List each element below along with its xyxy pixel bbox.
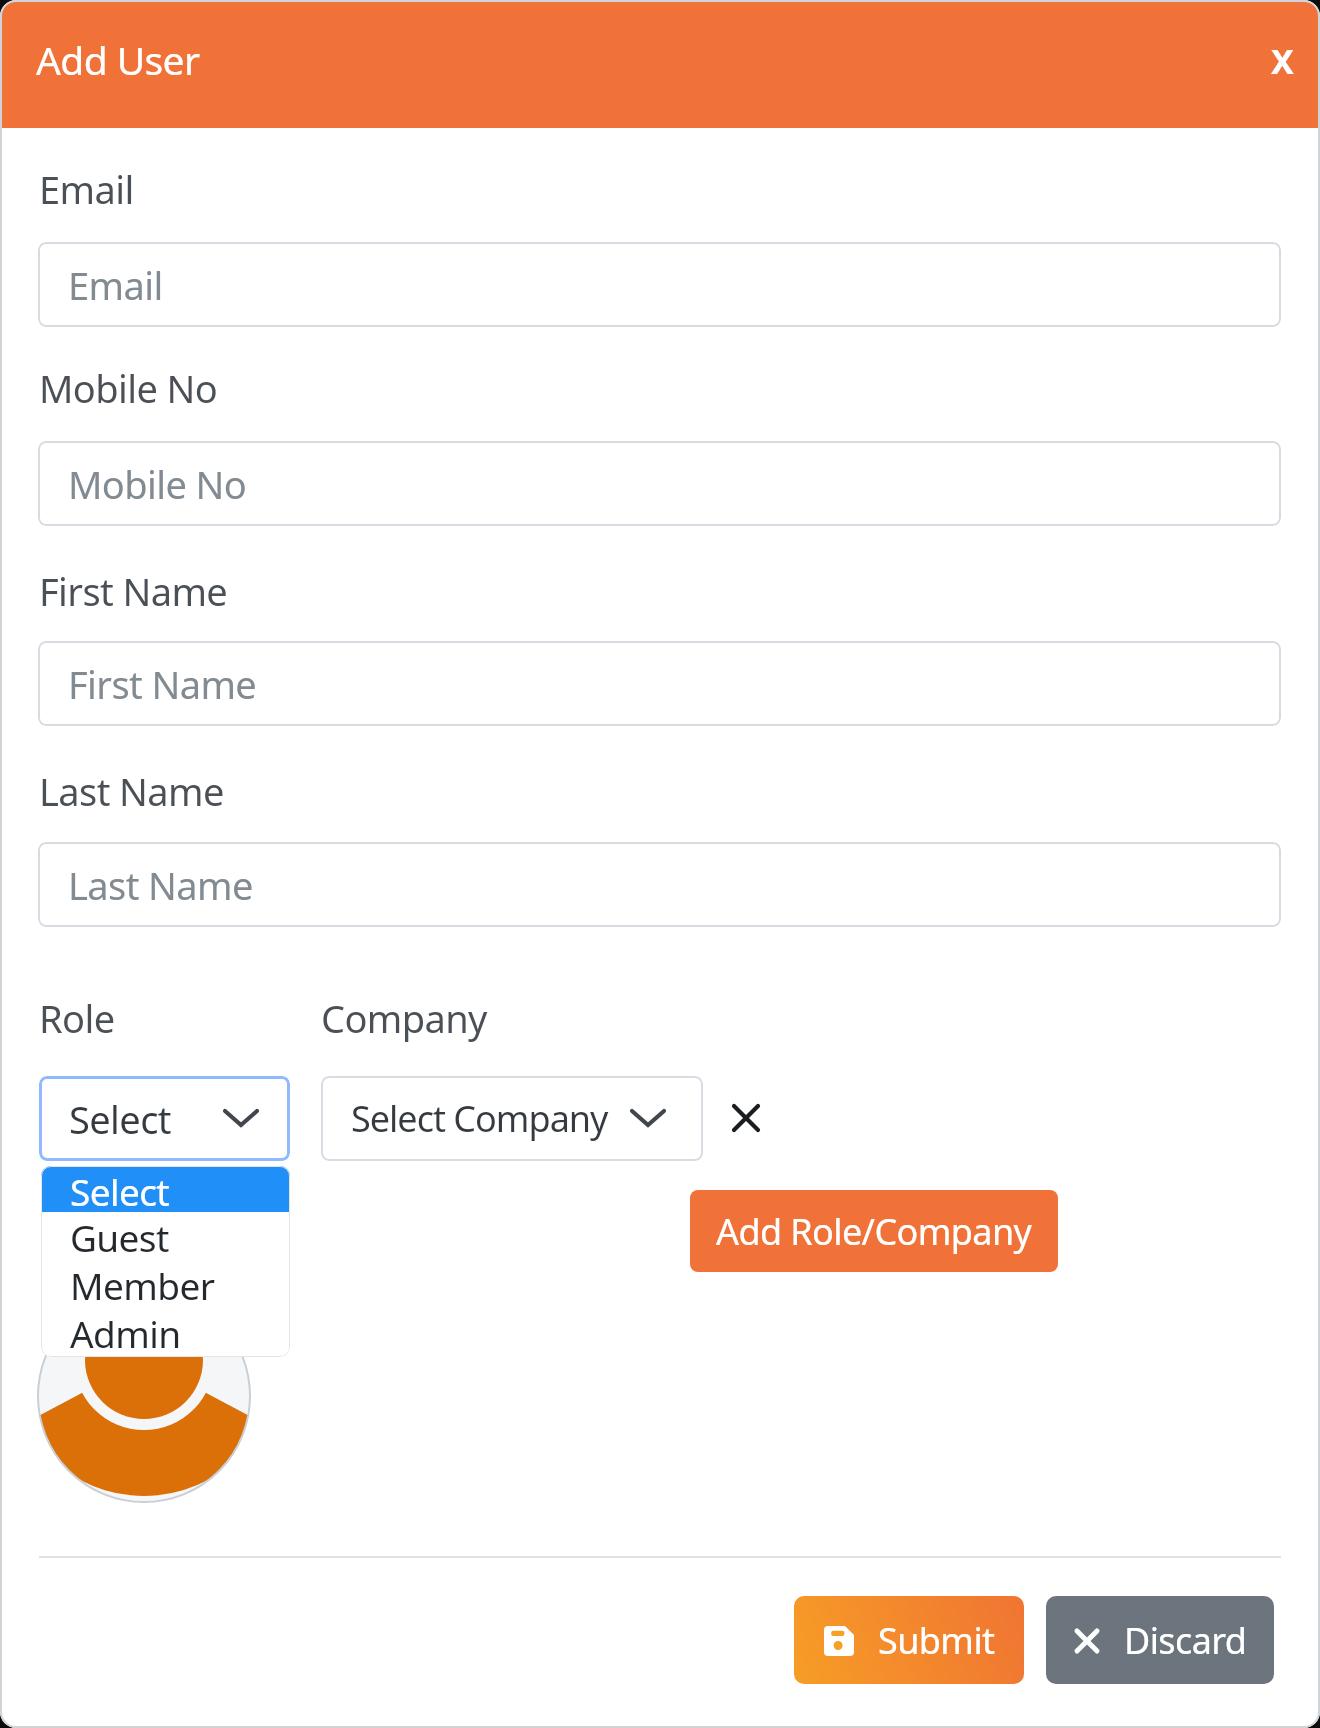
staticText: Add Role/Company	[716, 1207, 1032, 1256]
staticText: X	[1271, 38, 1294, 84]
button[interactable]: Select Company	[321, 1076, 703, 1161]
staticText: Add User	[36, 33, 200, 86]
button[interactable]: Discard	[1046, 1596, 1274, 1684]
staticText: Mobile No	[68, 458, 247, 510]
staticText: Select	[70, 1166, 170, 1212]
staticText: Discard	[1124, 1616, 1247, 1665]
staticText: Select	[69, 1093, 171, 1145]
button[interactable]: Select	[39, 1076, 290, 1161]
button[interactable]: Select	[41, 1166, 290, 1212]
button[interactable]: Submit	[794, 1596, 1024, 1684]
button[interactable]: Admin	[41, 1308, 290, 1356]
staticText: Member	[70, 1260, 215, 1308]
staticText: Guest	[70, 1212, 169, 1260]
button[interactable]: X	[1256, 39, 1308, 91]
button[interactable]: Last Name	[38, 842, 1281, 927]
staticText: Mobile No	[39, 362, 218, 414]
button[interactable]: Member	[41, 1260, 290, 1308]
staticText: Select Company	[351, 1094, 608, 1143]
staticText: Email	[68, 259, 163, 311]
staticText: Last Name	[68, 859, 253, 911]
button[interactable]: Add Role/Company	[690, 1190, 1058, 1272]
staticText: First Name	[39, 565, 228, 617]
button[interactable]: First Name	[38, 641, 1281, 726]
button[interactable]	[726, 1098, 766, 1138]
staticText: Submit	[878, 1616, 995, 1665]
button[interactable]: Guest	[41, 1212, 290, 1260]
staticText: First Name	[68, 658, 257, 710]
staticText: Role	[39, 992, 115, 1044]
staticText: Admin	[70, 1308, 181, 1356]
staticText: Last Name	[39, 765, 224, 817]
button[interactable]: Email	[38, 242, 1281, 327]
button[interactable]: Mobile No	[38, 441, 1281, 526]
staticText: Email	[39, 163, 134, 215]
staticText: Company	[321, 992, 487, 1044]
